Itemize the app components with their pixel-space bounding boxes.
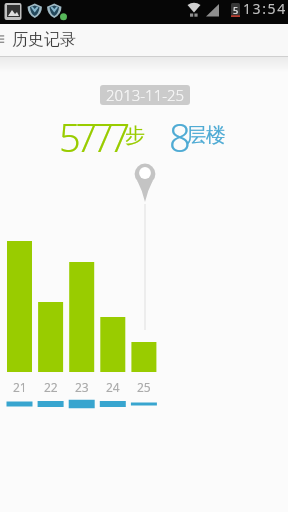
button[interactable] <box>131 237 157 409</box>
staticText: 步 <box>125 123 145 148</box>
staticText: 5 <box>233 4 239 16</box>
staticText: 13:54 <box>243 0 287 18</box>
button[interactable]: 2013-11-25 <box>100 85 190 105</box>
staticText: 层楼 <box>186 123 226 148</box>
staticText: 24 <box>106 379 120 395</box>
staticText: 22 <box>44 379 58 395</box>
staticText: 历史记录 <box>12 30 76 50</box>
staticText: 25 <box>137 379 151 395</box>
button[interactable] <box>7 237 33 409</box>
button[interactable] <box>38 237 64 409</box>
staticText: 21 <box>13 379 27 395</box>
button[interactable] <box>69 237 95 409</box>
staticText: 2013-11-25 <box>106 85 185 105</box>
staticText: 23 <box>75 379 89 395</box>
staticText: 5777 <box>59 111 125 163</box>
button[interactable] <box>100 237 126 409</box>
staticText: 8 <box>169 111 185 163</box>
button[interactable]: 历史记录 <box>0 24 288 56</box>
